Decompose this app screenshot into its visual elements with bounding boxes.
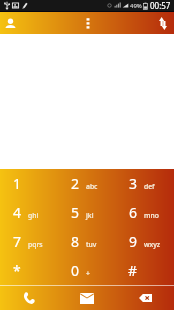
button[interactable]: Message bbox=[58, 286, 116, 310]
button[interactable]: 6 bbox=[116, 198, 174, 227]
staticText: 4 bbox=[13, 203, 22, 222]
button[interactable]: Contacts bbox=[4, 17, 17, 30]
staticText: 3 bbox=[129, 174, 138, 193]
button[interactable]: 3 bbox=[116, 169, 174, 198]
button[interactable]: 0 bbox=[58, 256, 116, 285]
button[interactable]: 8 bbox=[58, 227, 116, 256]
button[interactable]: 1 bbox=[0, 169, 58, 198]
staticText: tuv bbox=[86, 240, 97, 249]
staticText: 1 bbox=[13, 174, 22, 193]
staticText: 7 bbox=[13, 232, 22, 251]
staticText: 6 bbox=[129, 203, 138, 222]
button[interactable]: 2 bbox=[58, 169, 116, 198]
staticText: * bbox=[13, 261, 21, 280]
staticText: 8 bbox=[71, 232, 80, 251]
button[interactable]: 7 bbox=[0, 227, 58, 256]
button[interactable]: 5 bbox=[58, 198, 116, 227]
button[interactable]: Data transfer bbox=[156, 16, 170, 30]
staticText: 00:57 bbox=[150, 0, 171, 11]
staticText: 5 bbox=[71, 203, 80, 222]
staticText: # bbox=[128, 261, 138, 280]
staticText: pqrs bbox=[28, 240, 43, 249]
button[interactable]: * bbox=[0, 256, 58, 285]
staticText: 49% bbox=[130, 2, 142, 10]
staticText: wxyz bbox=[144, 240, 161, 249]
staticText: def bbox=[144, 182, 155, 191]
button[interactable]: 9 bbox=[116, 227, 174, 256]
button[interactable]: Call bbox=[0, 286, 58, 310]
button[interactable]: 4 bbox=[0, 198, 58, 227]
button[interactable]: More options bbox=[81, 13, 95, 33]
button[interactable]: # bbox=[116, 256, 174, 285]
staticText: jkl bbox=[86, 211, 94, 220]
staticText: abc bbox=[86, 182, 98, 191]
staticText: + bbox=[86, 269, 90, 278]
staticText: 9 bbox=[129, 232, 138, 251]
button[interactable]: Backspace bbox=[116, 286, 174, 310]
staticText: 0 bbox=[71, 261, 80, 280]
staticText: 2 bbox=[71, 174, 80, 193]
staticText: ghi bbox=[28, 211, 39, 220]
staticText: mno bbox=[144, 211, 159, 220]
